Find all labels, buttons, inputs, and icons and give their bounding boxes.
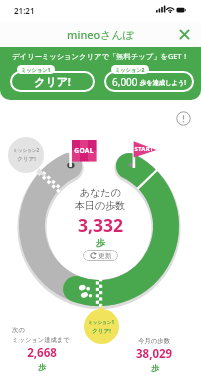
staticText: 歩 [151, 363, 159, 373]
staticText: 歩 [12, 362, 72, 372]
staticText: 38,029 [136, 346, 173, 362]
staticText: GOAL [72, 146, 96, 155]
staticText: ミッション達成まで [12, 336, 70, 344]
staticText: クリア! [92, 327, 111, 335]
staticText: 6,000 [112, 75, 138, 89]
staticText: 歩 [96, 237, 105, 248]
staticText: 本日の歩数 [75, 199, 126, 212]
button[interactable]: 6,000 [104, 71, 194, 92]
staticText: あなたの [80, 186, 121, 199]
staticText: クリア! [34, 74, 71, 89]
button[interactable]: Close [176, 26, 193, 43]
button[interactable]: Information [176, 111, 191, 126]
staticText: 3,332 [78, 213, 124, 237]
staticText: ミッション2 [13, 147, 40, 153]
staticText: 歩を達成しよう! [138, 78, 187, 87]
staticText: デイリーミッションクリアで「無料チップ」をGET！ [12, 51, 189, 61]
staticText: ミッション1 [88, 319, 115, 325]
staticText: ミッション2 [115, 66, 145, 73]
button[interactable]: クリア! [10, 71, 95, 92]
staticText: START [134, 145, 154, 153]
staticText: mineoさんぽ [67, 27, 135, 42]
staticText: 21:21 [14, 5, 35, 16]
staticText: 2,668 [12, 345, 72, 361]
staticText: 今月の歩数 [138, 337, 171, 345]
staticText: クリア! [17, 155, 36, 163]
button[interactable]: 更新 [83, 250, 118, 261]
staticText: ミッション1 [21, 66, 51, 73]
staticText: 次の [12, 326, 25, 334]
staticText: 更新 [98, 251, 112, 260]
